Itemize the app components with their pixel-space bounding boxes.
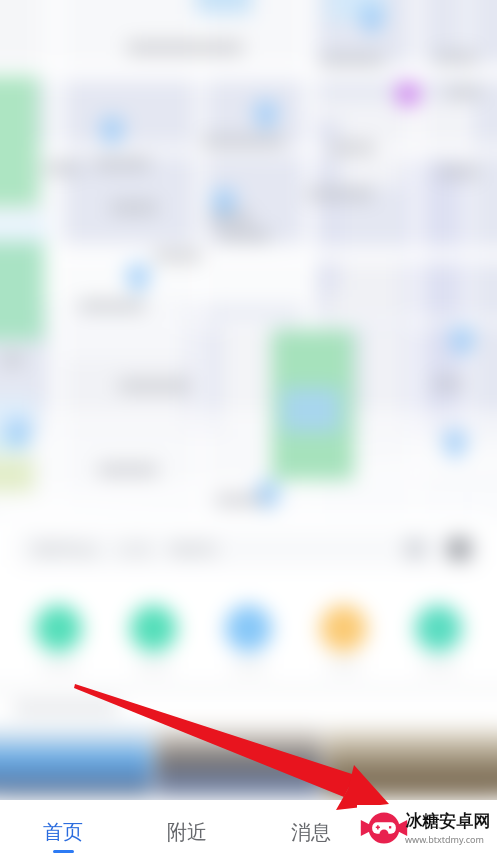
- staticText: 搜索地点、公交、地铁站: [32, 539, 219, 560]
- button[interactable]: 首页: [0, 800, 125, 853]
- staticText: 消息: [291, 820, 331, 845]
- staticText: 附近: [167, 820, 207, 845]
- button[interactable]: 搜索地点、公交、地铁站: [14, 530, 483, 568]
- staticText: 我的: [415, 820, 455, 845]
- button[interactable]: [130, 605, 177, 652]
- button[interactable]: [155, 726, 322, 798]
- button[interactable]: 我的: [373, 800, 497, 853]
- button[interactable]: [320, 605, 367, 652]
- staticText: 冰糖安卓网: [405, 811, 490, 832]
- button[interactable]: [415, 605, 462, 652]
- button[interactable]: 附近: [125, 800, 249, 853]
- button[interactable]: [225, 605, 272, 652]
- other: 冰糖安卓网: [363, 805, 490, 851]
- staticText: 首页: [43, 820, 83, 845]
- button[interactable]: 消息: [249, 800, 373, 853]
- button[interactable]: [325, 726, 497, 798]
- button[interactable]: [35, 605, 82, 652]
- button[interactable]: [0, 726, 152, 798]
- staticText: www.btxtdmy.com: [405, 833, 484, 845]
